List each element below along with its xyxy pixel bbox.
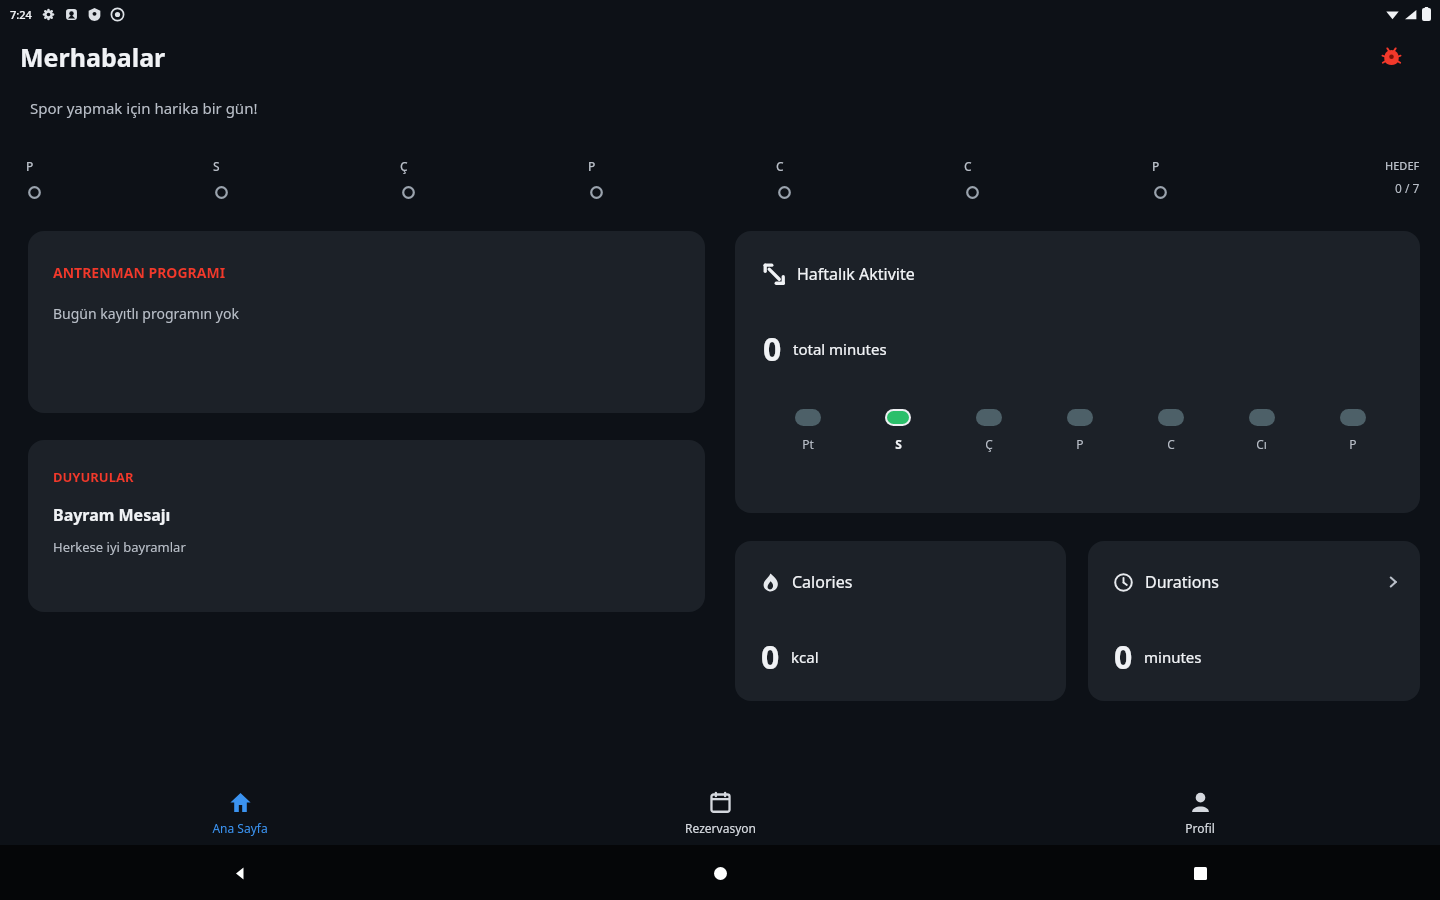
button[interactable]: ANTRENMAN PROGRAMI xyxy=(28,231,705,413)
button[interactable]: Bildirimler xyxy=(1374,40,1408,74)
button[interactable]: Rezervasyon xyxy=(480,783,960,845)
staticText: Cı xyxy=(1256,436,1267,452)
staticText: Bayram Mesajı xyxy=(53,504,171,526)
button[interactable]: Back xyxy=(218,851,262,895)
staticText: ANTRENMAN PROGRAMI xyxy=(53,263,226,282)
staticText: S xyxy=(895,436,902,452)
button[interactable]: Durations xyxy=(1088,541,1420,701)
staticText: P xyxy=(588,158,596,174)
staticText: 0 xyxy=(763,327,782,371)
button[interactable]: Haftalık Aktivite xyxy=(735,231,1420,513)
staticText: Profil xyxy=(1185,820,1215,836)
staticText: Merhabalar xyxy=(20,40,166,74)
staticText: P xyxy=(26,158,34,174)
staticText: Bugün kayıtlı programın yok xyxy=(53,304,239,323)
staticText: DUYURULAR xyxy=(53,468,134,486)
staticText: Ana Sayfa xyxy=(212,820,268,836)
staticText: Rezervasyon xyxy=(685,820,756,836)
button[interactable]: Recents xyxy=(1178,851,1222,895)
staticText: 0 xyxy=(1114,635,1133,679)
staticText: Durations xyxy=(1145,571,1219,593)
staticText: total minutes xyxy=(793,339,887,359)
button[interactable]: Calories xyxy=(735,541,1066,701)
button[interactable]: Ana Sayfa xyxy=(0,783,480,845)
staticText: Ç xyxy=(400,158,408,174)
staticText: P xyxy=(1076,436,1084,452)
staticText: C xyxy=(1167,436,1175,452)
staticText: C xyxy=(964,158,972,174)
staticText: 0 xyxy=(761,635,780,679)
staticText: P xyxy=(1349,436,1357,452)
button[interactable]: DUYURULAR xyxy=(28,440,705,612)
staticText: Herkese iyi bayramlar xyxy=(53,538,186,556)
staticText: 7:24 xyxy=(10,7,32,22)
button[interactable]: Profil xyxy=(960,783,1440,845)
staticText: Haftalık Aktivite xyxy=(797,263,915,285)
staticText: Calories xyxy=(792,571,853,593)
staticText: HEDEF xyxy=(1385,158,1420,173)
staticText: Spor yapmak için harika bir gün! xyxy=(30,98,258,118)
staticText: S xyxy=(213,158,220,174)
staticText: C xyxy=(776,158,784,174)
staticText: 0 / 7 xyxy=(1395,180,1420,196)
staticText: Pt xyxy=(802,436,814,452)
staticText: minutes xyxy=(1144,647,1202,667)
staticText: Ç xyxy=(985,436,993,452)
staticText: kcal xyxy=(791,647,819,667)
staticText: P xyxy=(1152,158,1160,174)
button[interactable]: Home xyxy=(698,851,742,895)
